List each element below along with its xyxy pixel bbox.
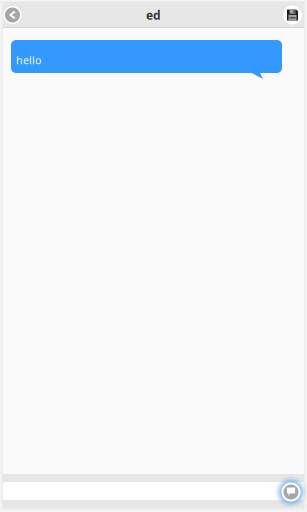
button[interactable]: Send [275, 476, 307, 508]
button[interactable]: Back [3, 5, 22, 24]
button[interactable]: Save [283, 5, 302, 24]
staticText: ed [146, 7, 161, 23]
staticText: hello [16, 53, 41, 67]
